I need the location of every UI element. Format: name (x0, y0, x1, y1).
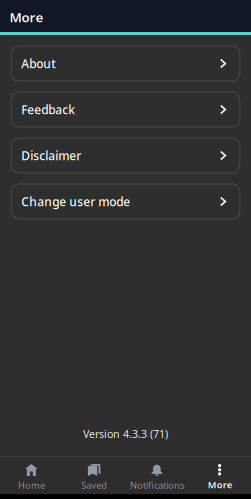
staticText: Change user mode (21, 193, 130, 209)
button[interactable]: Feedback (11, 92, 240, 127)
staticText: Feedback (21, 101, 75, 117)
button[interactable]: Change user mode (11, 184, 240, 219)
staticText: Disclaimer (21, 147, 81, 163)
staticText: More (9, 8, 43, 26)
button[interactable]: Home (0, 457, 63, 494)
staticText: Home (18, 479, 45, 491)
button[interactable]: Saved (63, 457, 126, 494)
button[interactable]: Notifications (125, 457, 188, 494)
button[interactable]: Disclaimer (11, 138, 240, 173)
staticText: Version 4.3.3 (71) (83, 427, 168, 441)
staticText: More (208, 478, 232, 491)
staticText: About (21, 55, 56, 71)
button[interactable]: About (11, 46, 240, 81)
button[interactable]: More (188, 457, 251, 494)
staticText: Notifications (130, 479, 184, 491)
staticText: Saved (81, 479, 107, 491)
